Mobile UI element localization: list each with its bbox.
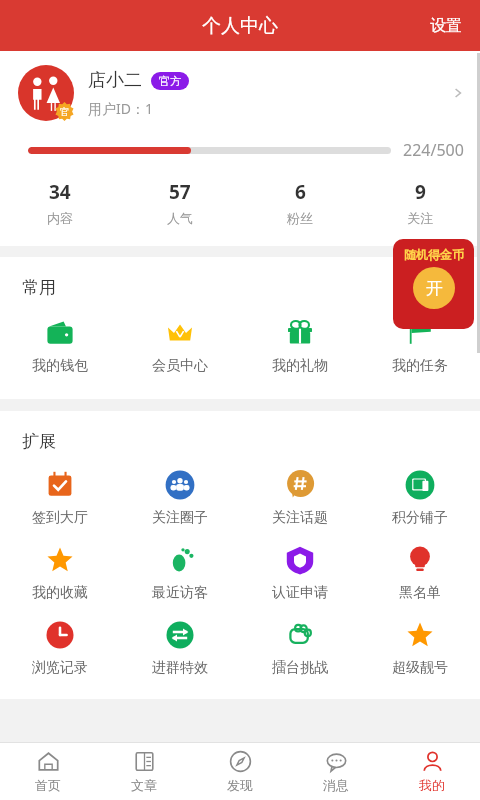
button[interactable]: 进群特效 bbox=[120, 618, 240, 679]
staticText: 签到大厅 bbox=[32, 509, 88, 527]
button[interactable]: 随机得金币 bbox=[393, 239, 474, 329]
staticText: 最近访客 bbox=[152, 584, 208, 602]
button[interactable]: 6 bbox=[240, 177, 360, 228]
staticText: 设置 bbox=[430, 16, 462, 36]
button[interactable]: 积分铺子 bbox=[360, 468, 480, 529]
staticText: 官 bbox=[60, 106, 69, 117]
button[interactable]: 消息 bbox=[288, 743, 384, 800]
button[interactable]: 浏览记录 bbox=[0, 618, 120, 679]
staticText: 发现 bbox=[227, 777, 253, 793]
button[interactable]: 设置 bbox=[412, 4, 480, 48]
button[interactable]: 发现 bbox=[192, 743, 288, 800]
staticText: 关注圈子 bbox=[152, 509, 208, 527]
staticText: 会员中心 bbox=[152, 357, 208, 375]
staticText: 34 bbox=[49, 179, 71, 205]
staticText: 粉丝 bbox=[287, 210, 313, 226]
staticText: 积分铺子 bbox=[392, 509, 448, 527]
button[interactable]: 34 bbox=[0, 177, 120, 228]
button[interactable]: 黑名单 bbox=[360, 543, 480, 604]
staticText: 57 bbox=[169, 179, 191, 205]
button[interactable]: 我的礼物 bbox=[240, 316, 360, 377]
button[interactable]: 首页 bbox=[0, 743, 96, 800]
button[interactable]: 签到大厅 bbox=[0, 468, 120, 529]
staticText: 关注 bbox=[407, 210, 433, 226]
button[interactable]: 官 bbox=[0, 51, 480, 121]
staticText: 店小二 bbox=[88, 69, 142, 92]
staticText: 用户ID：1 bbox=[88, 99, 153, 118]
button[interactable]: 我的收藏 bbox=[0, 543, 120, 604]
button[interactable]: 我的钱包 bbox=[0, 316, 120, 377]
button[interactable]: 9 bbox=[360, 177, 480, 228]
staticText: 官方 bbox=[159, 74, 181, 88]
button[interactable]: 文章 bbox=[96, 743, 192, 800]
staticText: 超级靓号 bbox=[392, 659, 448, 677]
staticText: 我的钱包 bbox=[32, 357, 88, 375]
staticText: 224/500 bbox=[403, 139, 464, 161]
button[interactable]: 超级靓号 bbox=[360, 618, 480, 679]
staticText: 开 bbox=[426, 278, 443, 299]
staticText: 擂台挑战 bbox=[272, 659, 328, 677]
staticText: 文章 bbox=[131, 777, 157, 793]
staticText: 黑名单 bbox=[399, 584, 441, 602]
staticText: 我的 bbox=[419, 777, 445, 793]
button[interactable]: 最近访客 bbox=[120, 543, 240, 604]
staticText: 进群特效 bbox=[152, 659, 208, 677]
staticText: 9 bbox=[415, 179, 426, 205]
button[interactable]: 我的任务 bbox=[360, 316, 480, 377]
staticText: 扩展 bbox=[22, 431, 56, 452]
button[interactable]: 擂台挑战 bbox=[240, 618, 360, 679]
staticText: 内容 bbox=[47, 210, 73, 226]
staticText: 我的任务 bbox=[392, 357, 448, 375]
staticText: 我的收藏 bbox=[32, 584, 88, 602]
staticText: 人气 bbox=[167, 210, 193, 226]
staticText: 浏览记录 bbox=[32, 659, 88, 677]
staticText: 认证申请 bbox=[272, 584, 328, 602]
staticText: 我的礼物 bbox=[272, 357, 328, 375]
button[interactable]: 57 bbox=[120, 177, 240, 228]
button[interactable]: 我的 bbox=[384, 743, 480, 800]
staticText: 首页 bbox=[35, 777, 61, 793]
staticText: 个人中心 bbox=[202, 14, 278, 38]
button[interactable]: 关注话题 bbox=[240, 468, 360, 529]
button[interactable]: 关注圈子 bbox=[120, 468, 240, 529]
button[interactable]: 认证申请 bbox=[240, 543, 360, 604]
staticText: 随机得金币 bbox=[404, 247, 464, 262]
button[interactable]: 会员中心 bbox=[120, 316, 240, 377]
staticText: 关注话题 bbox=[272, 509, 328, 527]
staticText: 常用 bbox=[22, 277, 56, 298]
staticText: 消息 bbox=[323, 777, 349, 793]
staticText: 6 bbox=[295, 179, 306, 205]
